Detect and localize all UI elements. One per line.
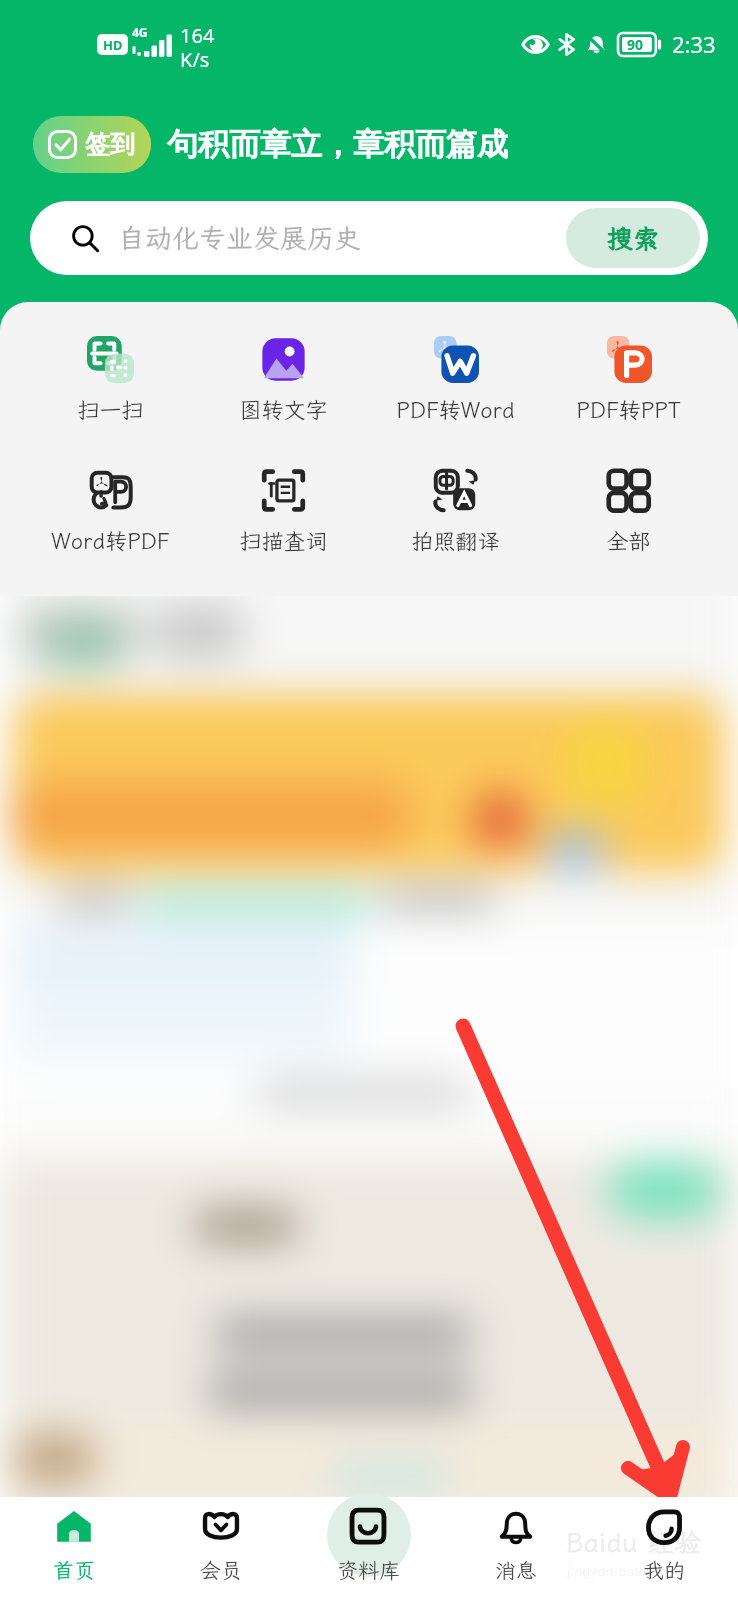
staticText: Baidu 经验 [566, 1524, 702, 1560]
staticText: PDF转PPT [576, 395, 681, 424]
button[interactable]: 全部 [542, 467, 714, 555]
staticText: 句积而章立，章积而篇成 [167, 125, 508, 164]
staticText: 拍照翻译 [411, 526, 500, 555]
staticText: 扫一扫 [77, 395, 144, 424]
staticText: jingyan.baidu.com [566, 1562, 687, 1580]
staticText: 2:33 [672, 29, 716, 59]
button[interactable]: 图转文字 [197, 336, 369, 424]
staticText: 自动化专业发展历史 [118, 220, 361, 256]
button[interactable]: Search [30, 201, 708, 275]
staticText: 我的 [643, 1556, 685, 1584]
staticText: 扫描查词 [239, 526, 328, 555]
button[interactable]: 扫描查词 [197, 467, 369, 555]
staticText: 图转文字 [239, 395, 328, 424]
button[interactable]: 拍照翻译 [369, 467, 541, 555]
button[interactable]: 资料库 [294, 1497, 442, 1600]
button[interactable]: 扫一扫 [24, 336, 196, 424]
staticText: HD [103, 36, 123, 54]
staticText: 90 [627, 35, 644, 54]
button[interactable]: 我的 [590, 1497, 738, 1600]
button[interactable]: PDF转PPT [542, 336, 714, 424]
button[interactable]: 首页 [0, 1497, 147, 1600]
button[interactable]: 会员 [147, 1497, 294, 1600]
staticText: PDF转Word [396, 395, 515, 424]
staticText: 全部 [606, 526, 651, 555]
button[interactable]: Word转PDF [24, 467, 196, 555]
staticText: 搜索 [607, 221, 660, 255]
staticText: 首页 [53, 1556, 95, 1584]
staticText: 会员 [200, 1556, 242, 1584]
staticText: 164 [180, 22, 215, 49]
staticText: 消息 [495, 1556, 537, 1584]
button[interactable]: 搜索 [566, 208, 700, 268]
button[interactable]: PDF转Word [369, 336, 541, 424]
button[interactable]: 签到 [33, 116, 151, 173]
other: Search [71, 224, 100, 253]
staticText: Word转PDF [51, 526, 170, 555]
button[interactable]: 消息 [442, 1497, 590, 1600]
staticText: 签到 [85, 129, 135, 160]
staticText: 资料库 [337, 1556, 400, 1584]
staticText: K/s [180, 46, 210, 73]
staticText: 4G [132, 24, 148, 40]
